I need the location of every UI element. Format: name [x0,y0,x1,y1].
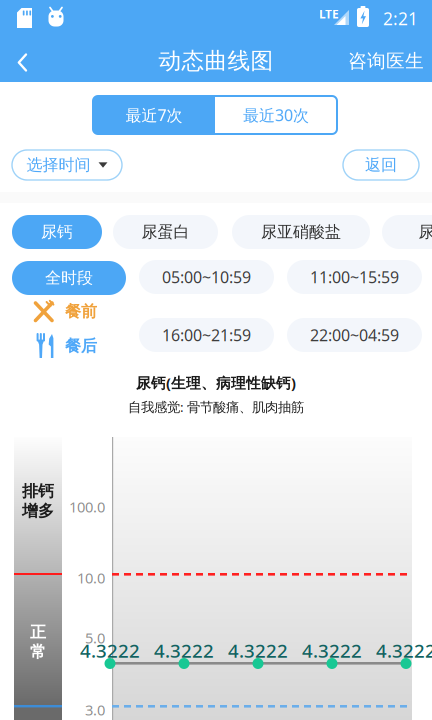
staticText: 最近7次 [125,104,182,126]
staticText: 16:00~21:59 [162,324,251,346]
button[interactable]: 尿糖 [382,215,432,249]
staticText: 尿钙(生理、病理性缺钙) [136,373,296,392]
button[interactable]: 餐后 [36,332,97,360]
staticText: 动态曲线图 [158,47,273,75]
button[interactable]: 选择时间 [12,150,122,180]
staticText: 最近30次 [243,104,309,126]
button[interactable]: 尿蛋白 [113,215,218,249]
button[interactable]: 咨询医生 [344,47,428,75]
staticText: 正 常 [30,622,46,662]
button[interactable]: 16:00~21:59 [139,318,274,352]
button[interactable]: 尿亚硝酸盐 [232,215,370,249]
button[interactable]: 动态曲线图 [0,47,432,75]
staticText: 05:00~10:59 [162,266,251,288]
staticText: 返回 [365,155,397,175]
staticText: 选择时间 [26,155,90,175]
staticText: LTE [319,6,339,22]
staticText: 全时段 [45,268,93,288]
button[interactable]: 22:00~04:59 [287,318,422,352]
staticText: 4.3222 [302,638,362,663]
staticText: 22:00~04:59 [310,324,399,346]
staticText: 排钙 增多 [22,481,54,521]
staticText: 餐后 [65,336,97,356]
staticText: 5.0 [85,628,105,647]
staticText: 咨询医生 [348,49,424,72]
staticText: 11:00~15:59 [310,266,399,288]
staticText: 2:21 [383,7,418,30]
staticText: 3.0 [85,700,105,719]
staticText: 100.0 [69,497,105,516]
button[interactable]: 最近30次 [215,96,337,134]
staticText: 尿糖 [418,222,432,242]
button[interactable]: 全时段 [12,261,126,295]
button[interactable]: 餐前 [33,299,97,324]
staticText: 尿钙 [41,222,73,242]
button[interactable]: 05:00~10:59 [139,260,274,294]
button[interactable]: 最近7次 [93,96,215,134]
button[interactable]: 尿钙 [12,215,102,249]
staticText: 4.3222 [228,638,288,663]
staticText: 4.3222 [376,638,432,663]
staticText: 10.0 [77,568,105,587]
button[interactable]: Back [11,47,34,78]
staticText: 4.3222 [80,638,140,663]
staticText: 尿蛋白 [141,222,189,242]
button[interactable]: 返回 [343,150,419,180]
staticText: 4.3222 [154,638,214,663]
staticText: 餐前 [65,302,97,321]
button[interactable]: 11:00~15:59 [287,260,422,294]
staticText: 尿亚硝酸盐 [261,222,341,242]
staticText: 自我感觉: 骨节酸痛、肌肉抽筋 [128,398,304,416]
